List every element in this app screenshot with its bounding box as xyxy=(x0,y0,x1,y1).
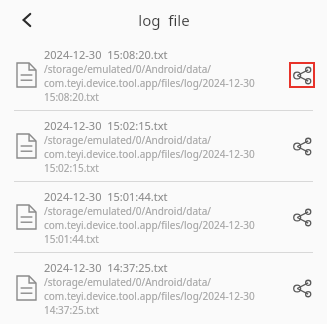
staticText: 15:02:15.txt xyxy=(44,161,99,175)
staticText: com.teyi.device.tool.app/files/log/2024-… xyxy=(44,289,255,303)
staticText: 2024-12-30 15:01:44.txt xyxy=(44,189,168,204)
staticText: 14:37:25.txt xyxy=(44,303,99,317)
button[interactable]: 2024-12-30 15:02:15.txt xyxy=(0,111,327,181)
staticText: /storage/emulated/0/Android/data/ xyxy=(44,275,211,289)
staticText: 15:08:20.txt xyxy=(44,90,99,104)
button[interactable]: 2024-12-30 15:01:44.txt xyxy=(0,182,327,252)
staticText: 15:01:44.txt xyxy=(44,232,99,246)
staticText: log file xyxy=(138,10,190,30)
staticText: com.teyi.device.tool.app/files/log/2024-… xyxy=(44,147,255,161)
staticText: /storage/emulated/0/Android/data/ xyxy=(44,204,211,218)
button[interactable]: 2024-12-30 15:08:20.txt xyxy=(0,40,327,110)
staticText: 2024-12-30 15:02:15.txt xyxy=(44,118,168,133)
staticText: /storage/emulated/0/Android/data/ xyxy=(44,133,211,147)
button[interactable]: Share xyxy=(289,275,315,301)
button[interactable]: Share xyxy=(289,62,315,88)
staticText: 2024-12-30 14:37:25.txt xyxy=(44,260,168,275)
staticText: com.teyi.device.tool.app/files/log/2024-… xyxy=(44,76,255,90)
button[interactable]: 2024-12-30 14:37:25.txt xyxy=(0,253,327,323)
button[interactable]: Share xyxy=(289,133,315,159)
staticText: /storage/emulated/0/Android/data/ xyxy=(44,62,211,76)
button[interactable]: Share xyxy=(289,204,315,230)
staticText: com.teyi.device.tool.app/files/log/2024-… xyxy=(44,218,255,232)
staticText: 2024-12-30 15:08:20.txt xyxy=(44,47,168,62)
button[interactable]: Back xyxy=(10,3,44,37)
